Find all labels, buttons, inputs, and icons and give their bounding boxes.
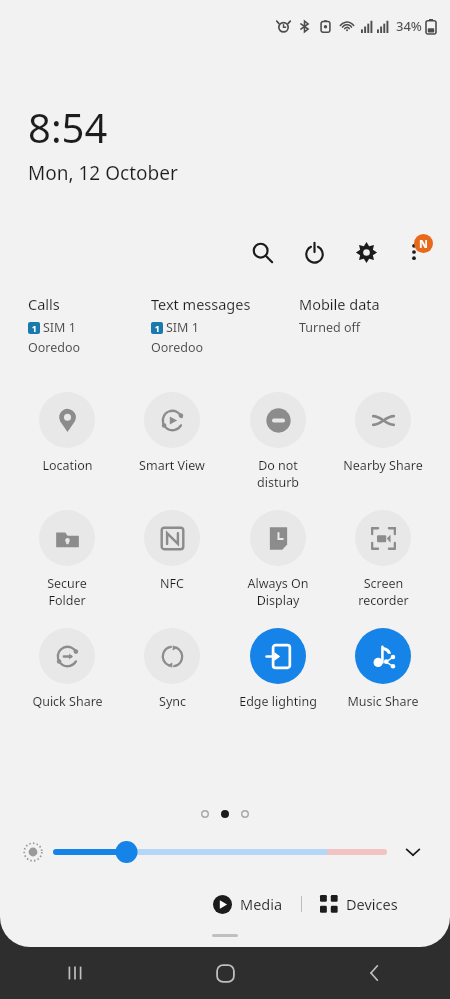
- button[interactable]: Edge lighting: [229, 626, 327, 712]
- staticText: Media: [240, 894, 283, 914]
- staticText: Music Share: [347, 693, 419, 710]
- staticText: Turned off: [299, 319, 361, 336]
- staticText: Screen recorder: [358, 575, 409, 608]
- button[interactable]: Expand brightness settings: [398, 837, 428, 867]
- staticText: 1: [32, 323, 37, 334]
- staticText: Location: [42, 457, 93, 474]
- button[interactable]: Home: [150, 947, 300, 999]
- staticText: Always On Display: [247, 575, 309, 608]
- button[interactable]: Nearby Share: [334, 390, 432, 476]
- staticText: Mon, 12 October: [28, 160, 178, 186]
- staticText: 1: [155, 323, 160, 334]
- staticText: Do not disturb: [257, 457, 299, 490]
- button[interactable]: Calls: [28, 294, 151, 356]
- button[interactable]: Secure Folder: [18, 508, 116, 610]
- button[interactable]: Text messages: [151, 294, 299, 356]
- staticText: 8:54: [28, 100, 108, 154]
- staticText: Sync: [159, 693, 186, 710]
- staticText: N: [419, 236, 428, 251]
- staticText: Calls: [28, 294, 60, 314]
- staticText: Quick Share: [32, 693, 103, 710]
- button[interactable]: Devices: [314, 890, 404, 918]
- button[interactable]: Smart View: [123, 390, 221, 476]
- button[interactable]: Sync: [123, 626, 221, 712]
- button[interactable]: Screen recorder: [334, 508, 432, 610]
- staticText: Secure Folder: [47, 575, 87, 608]
- button[interactable]: Always On Display: [229, 508, 327, 610]
- staticText: Devices: [346, 894, 398, 914]
- staticText: 34%: [396, 17, 422, 35]
- button[interactable]: Brightness: [56, 837, 384, 867]
- staticText: Mobile data: [299, 294, 380, 314]
- button[interactable]: Do not disturb: [229, 390, 327, 492]
- button[interactable]: Search: [244, 234, 280, 270]
- staticText: Ooredoo: [151, 339, 204, 356]
- staticText: NFC: [160, 575, 184, 592]
- button[interactable]: Mobile data: [299, 294, 422, 336]
- button[interactable]: Music Share: [334, 626, 432, 712]
- button[interactable]: Location: [18, 390, 116, 476]
- staticText: Text messages: [151, 294, 251, 314]
- button[interactable]: Back: [300, 947, 450, 999]
- staticText: Nearby Share: [343, 457, 423, 474]
- button[interactable]: Recents: [0, 947, 150, 999]
- staticText: SIM 1: [43, 319, 76, 336]
- staticText: Smart View: [139, 457, 205, 474]
- button[interactable]: Power off: [296, 234, 332, 270]
- button[interactable]: More options: [396, 234, 432, 270]
- staticText: Edge lighting: [239, 693, 317, 710]
- button[interactable]: NFC: [123, 508, 221, 594]
- staticText: SIM 1: [166, 319, 199, 336]
- button[interactable]: Quick Share: [18, 626, 116, 712]
- button[interactable]: Media: [207, 890, 289, 918]
- staticText: Ooredoo: [28, 339, 81, 356]
- button[interactable]: Settings: [348, 234, 384, 270]
